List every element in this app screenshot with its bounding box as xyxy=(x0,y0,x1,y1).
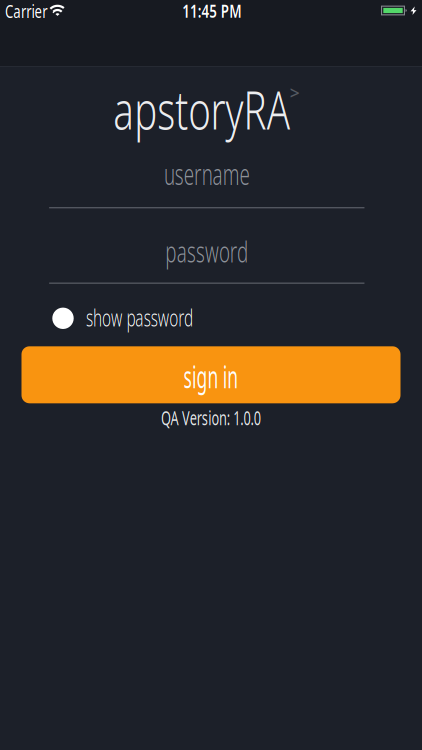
staticText: > xyxy=(290,81,300,104)
staticText: password xyxy=(142,231,272,270)
staticText: sign in xyxy=(163,356,259,397)
button[interactable]: show password xyxy=(52,306,191,330)
button[interactable]: password xyxy=(49,242,364,284)
staticText: 11:45 PM xyxy=(173,0,250,23)
staticText: username xyxy=(140,154,274,193)
staticText: QA Version: 1.0.0 xyxy=(133,404,289,431)
staticText: Carrier xyxy=(0,0,54,23)
staticText: apstoryRA xyxy=(79,73,324,144)
button[interactable]: username xyxy=(49,166,364,208)
staticText: show password xyxy=(56,301,223,333)
button[interactable]: sign in xyxy=(21,346,400,403)
